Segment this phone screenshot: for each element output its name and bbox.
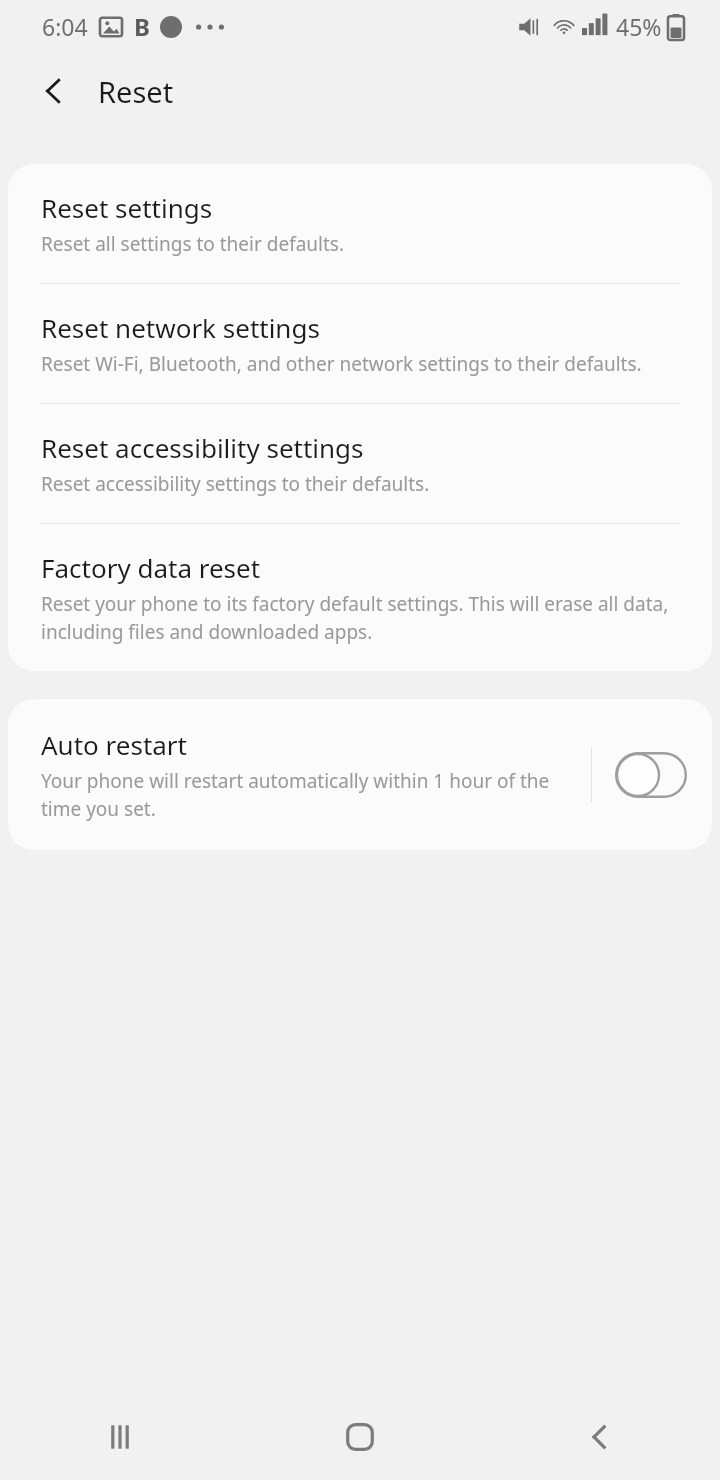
staticText: 6:04: [42, 11, 88, 42]
staticText: Reset Wi-Fi, Bluetooth, and other networ…: [41, 351, 642, 377]
staticText: B: [134, 10, 150, 43]
button[interactable]: Back: [480, 1394, 720, 1480]
staticText: 45%: [616, 11, 662, 42]
staticText: Factory data reset: [41, 550, 261, 585]
button[interactable]: Back: [20, 57, 88, 125]
staticText: Reset accessibility settings: [41, 430, 364, 465]
staticText: Reset settings: [41, 190, 213, 225]
button[interactable]: Reset settings: [8, 164, 712, 283]
button[interactable]: Recent apps: [0, 1394, 240, 1480]
button[interactable]: Auto restart toggle: [608, 742, 694, 808]
staticText: Reset your phone to its factory default …: [41, 591, 672, 645]
button[interactable]: Auto restart: [8, 699, 712, 850]
button[interactable]: Reset network settings: [8, 284, 712, 403]
staticText: Reset all settings to their defaults.: [41, 231, 345, 257]
button[interactable]: Factory data reset: [8, 524, 712, 671]
staticText: Reset: [98, 72, 174, 111]
staticText: Your phone will restart automatically wi…: [41, 768, 583, 822]
staticText: Auto restart: [41, 727, 187, 762]
staticText: Reset network settings: [41, 310, 320, 345]
button[interactable]: Home: [240, 1394, 480, 1480]
button[interactable]: Reset accessibility settings: [8, 404, 712, 523]
staticText: Reset accessibility settings to their de…: [41, 471, 430, 497]
